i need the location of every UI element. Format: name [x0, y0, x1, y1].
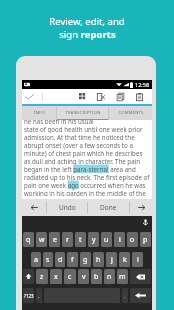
staticText: t: [79, 235, 82, 245]
button[interactable]: y: [88, 232, 99, 247]
staticText: y: [92, 235, 96, 245]
button[interactable]: TRANSCRIPTION: [57, 106, 108, 120]
button[interactable]: a: [31, 252, 41, 267]
staticText: p: [143, 235, 148, 245]
staticText: Review, edit, and: [49, 15, 125, 28]
staticText: radiated up to his neck. The first episo…: [24, 173, 150, 181]
staticText: g: [83, 255, 88, 265]
staticText: ,: [38, 292, 40, 300]
button[interactable]: o: [127, 232, 138, 247]
staticText: admission. At that time he noticed the: [24, 133, 135, 141]
staticText: o: [130, 235, 135, 245]
staticText: s: [46, 255, 50, 265]
staticText: q: [26, 235, 31, 245]
button[interactable]: Paste: [132, 89, 147, 104]
button[interactable]: Comma: [36, 288, 42, 303]
staticText: minute) of chest pain which he describes: [24, 149, 143, 157]
button[interactable]: l: [132, 252, 143, 267]
button[interactable]: p: [140, 232, 151, 247]
button[interactable]: w: [36, 232, 47, 247]
button[interactable]: Previous: [22, 199, 46, 216]
staticText: 12:58: [135, 81, 150, 88]
button[interactable]: t: [75, 232, 86, 247]
staticText: n: [107, 272, 112, 282]
button[interactable]: z: [36, 269, 48, 284]
staticText: Undo: [59, 203, 76, 212]
staticText: v: [82, 272, 86, 282]
staticText: COMMENTS: [118, 110, 144, 116]
staticText: j: [111, 255, 113, 265]
staticText: as dull and aching in character. The pai…: [24, 157, 141, 165]
button[interactable]: e: [49, 232, 60, 247]
button[interactable]: q: [23, 232, 34, 247]
button[interactable]: Next: [130, 199, 152, 216]
button[interactable]: i: [114, 232, 125, 247]
button[interactable]: v: [78, 269, 89, 284]
staticText: .: [124, 292, 126, 300]
staticText: ?123: [24, 293, 34, 299]
button[interactable]: Done: [88, 199, 129, 216]
button[interactable]: INFO: [22, 106, 56, 120]
staticText: l: [137, 255, 139, 265]
staticText: he has been in his usual: [24, 120, 94, 125]
staticText: c: [68, 272, 72, 282]
button[interactable]: Undo: [47, 199, 87, 216]
button[interactable]: u: [101, 232, 112, 247]
button[interactable]: Enter: [130, 288, 151, 303]
button[interactable]: Shift: [23, 269, 34, 284]
button[interactable]: x: [50, 269, 62, 284]
staticText: m: [119, 272, 126, 282]
button[interactable]: Approve: [21, 89, 37, 104]
staticText: w: [39, 235, 45, 245]
button[interactable]: d: [55, 252, 65, 267]
button[interactable]: f: [67, 252, 78, 267]
button[interactable]: h: [93, 252, 104, 267]
staticText: h: [96, 255, 101, 265]
staticText: r: [66, 235, 69, 245]
button[interactable]: m: [117, 269, 128, 284]
staticText: abrupt onset (over a few seconds to a: [24, 141, 133, 149]
staticText: pain one week ago occurred when he was: [24, 181, 146, 189]
staticText: sign reports: [59, 28, 116, 41]
staticText: working in his garden in the middle of t…: [24, 189, 146, 196]
staticText: INFO: [34, 110, 45, 116]
button[interactable]: r: [62, 232, 73, 247]
staticText: began in the left para-sternal area and: [24, 165, 136, 173]
button[interactable]: Symbols: [23, 288, 34, 303]
button[interactable]: s: [43, 252, 53, 267]
staticText: k: [123, 255, 127, 265]
staticText: d: [58, 255, 63, 265]
button[interactable]: c: [64, 269, 76, 284]
staticText: b: [94, 272, 99, 282]
button[interactable]: Select all: [75, 89, 90, 104]
staticText: Done: [100, 203, 117, 212]
button[interactable]: Cut: [93, 89, 108, 104]
button[interactable]: Copy: [113, 89, 128, 104]
staticText: e: [53, 235, 57, 245]
staticText: f: [71, 255, 74, 265]
staticText: z: [40, 272, 44, 282]
button[interactable]: g: [80, 252, 91, 267]
staticText: i: [119, 235, 121, 245]
button[interactable]: b: [91, 269, 102, 284]
button[interactable]: n: [104, 269, 115, 284]
button[interactable]: j: [106, 252, 117, 267]
button[interactable]: Voice input: [139, 216, 152, 228]
staticText: a: [34, 255, 38, 265]
staticText: state of good health until one week prio…: [24, 125, 150, 133]
staticText: TRANSCRIPTION: [65, 110, 101, 116]
button[interactable]: Period: [122, 288, 128, 303]
staticText: u: [104, 235, 109, 245]
button[interactable]: Backspace: [130, 269, 151, 284]
button[interactable]: COMMENTS: [109, 106, 152, 120]
button[interactable]: k: [119, 252, 130, 267]
staticText: x: [54, 272, 58, 282]
